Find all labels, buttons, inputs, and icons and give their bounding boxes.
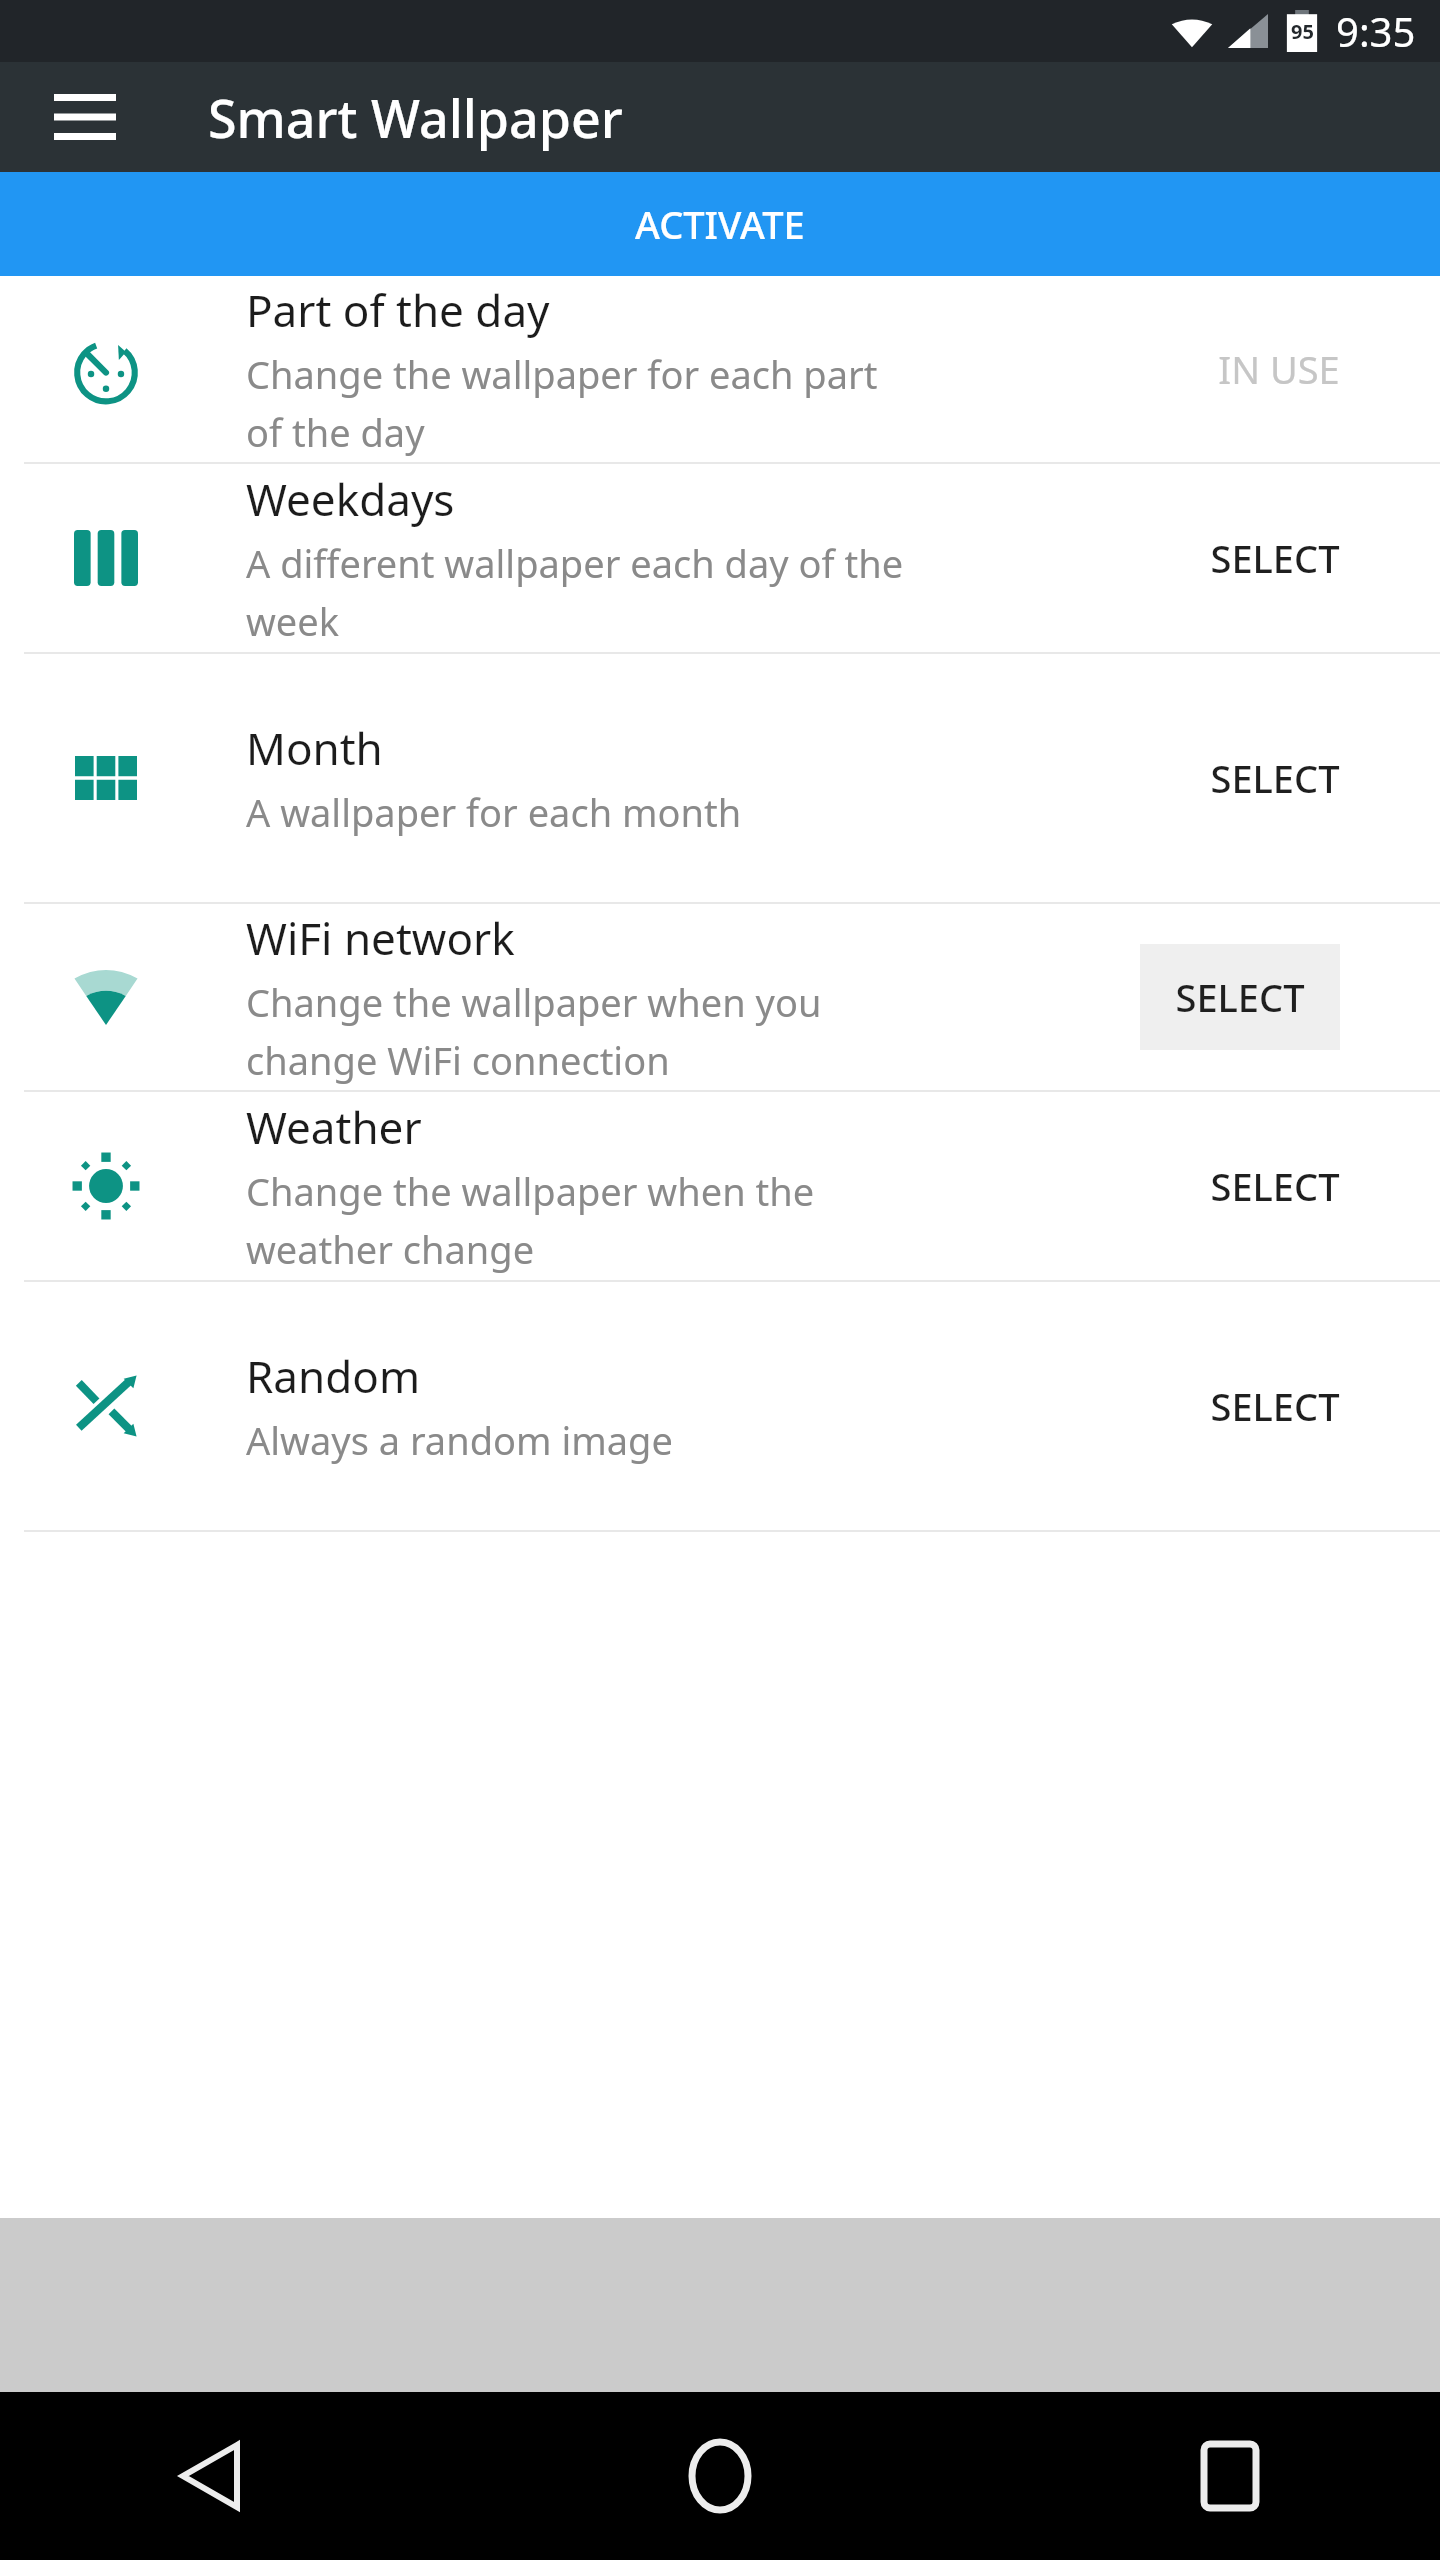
staticText: Always a random image <box>246 1414 673 1466</box>
button[interactable]: Open navigation menu <box>48 80 122 154</box>
staticText: SELECT <box>1210 1380 1340 1432</box>
button[interactable]: ACTIVATE <box>0 172 1440 276</box>
button[interactable]: Weekdays <box>0 464 1440 652</box>
staticText: ACTIVATE <box>635 198 805 250</box>
button[interactable]: Random <box>0 1282 1440 1530</box>
staticText: Month <box>246 718 383 778</box>
staticText: IN USE <box>1218 343 1340 395</box>
staticText: Change the wallpaper when you change WiF… <box>246 976 822 1086</box>
button[interactable]: Weather <box>0 1092 1440 1280</box>
button[interactable]: SELECT <box>1210 752 1340 804</box>
staticText: Weekdays <box>246 469 455 529</box>
staticText: Weather <box>246 1097 422 1157</box>
staticText: A different wallpaper each day of the we… <box>246 537 904 647</box>
button[interactable]: SELECT <box>1210 532 1340 584</box>
staticText: SELECT <box>1210 532 1340 584</box>
staticText: SELECT <box>1210 1160 1340 1212</box>
button[interactable]: IN USE <box>1218 343 1340 395</box>
button[interactable]: Recent apps <box>1170 2416 1290 2536</box>
button[interactable]: SELECT <box>1210 1380 1340 1432</box>
staticText: Random <box>246 1346 421 1406</box>
staticText: SELECT <box>1210 752 1340 804</box>
button[interactable]: Month <box>0 654 1440 902</box>
button[interactable]: Part of the day <box>0 276 1440 462</box>
button[interactable]: SELECT <box>1140 944 1340 1050</box>
staticText: Change the wallpaper for each part of th… <box>246 348 878 458</box>
staticText: Smart Wallpaper <box>208 82 623 153</box>
staticText: WiFi network <box>246 908 515 968</box>
staticText: Part of the day <box>246 280 550 340</box>
button[interactable]: Home <box>660 2416 780 2536</box>
staticText: 95 <box>1291 18 1314 45</box>
staticText: 9:35 <box>1336 4 1416 58</box>
staticText: A wallpaper for each month <box>246 786 742 838</box>
button[interactable]: SELECT <box>1210 1160 1340 1212</box>
button[interactable]: Back <box>150 2416 270 2536</box>
staticText: SELECT <box>1175 971 1305 1023</box>
button[interactable]: WiFi network <box>0 904 1440 1090</box>
staticText: Change the wallpaper when the weather ch… <box>246 1165 815 1275</box>
